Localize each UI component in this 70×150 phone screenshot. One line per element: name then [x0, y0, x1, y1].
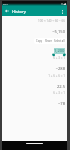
staticText: 9:41: [3, 2, 8, 5]
staticText: −78: [57, 101, 65, 107]
button[interactable]: Copy: [35, 38, 44, 44]
button[interactable]: 1,200: [2, 47, 67, 55]
staticText: Copy: [36, 39, 43, 43]
staticText: −288: [55, 66, 65, 72]
button[interactable]: 1 + 6 + 6 = 1: [2, 74, 67, 78]
staticText: 6 + 3 = 1: [53, 56, 65, 60]
button[interactable]: More options: [58, 7, 67, 16]
button[interactable]: Share: [44, 38, 53, 44]
button[interactable]: −5,150: [2, 29, 67, 35]
staticText: 100 × 140 ÷ 60 − 66: [38, 19, 65, 23]
staticText: 22.5: [56, 84, 65, 90]
button[interactable]: Select all: [53, 38, 66, 44]
staticText: Share: [45, 39, 52, 43]
button[interactable]: 100 × 140 ÷ 60 − 66: [2, 19, 67, 23]
staticText: History: [12, 9, 26, 14]
staticText: −5,150: [52, 29, 65, 35]
button[interactable]: Navigate up: [2, 6, 12, 16]
staticText: Select all: [54, 39, 65, 43]
button[interactable]: −78: [2, 101, 67, 107]
staticText: 1,200: [54, 48, 65, 54]
button[interactable]: −288: [2, 66, 67, 72]
button[interactable]: 22.5: [2, 84, 67, 90]
button[interactable]: 6 + 3 = 1: [2, 56, 67, 60]
button[interactable]: 6 + 3 = 1: [2, 91, 67, 95]
staticText: 6 + 3 = 1: [53, 91, 65, 95]
staticText: 1 + 6 + 6 = 1: [48, 74, 65, 78]
